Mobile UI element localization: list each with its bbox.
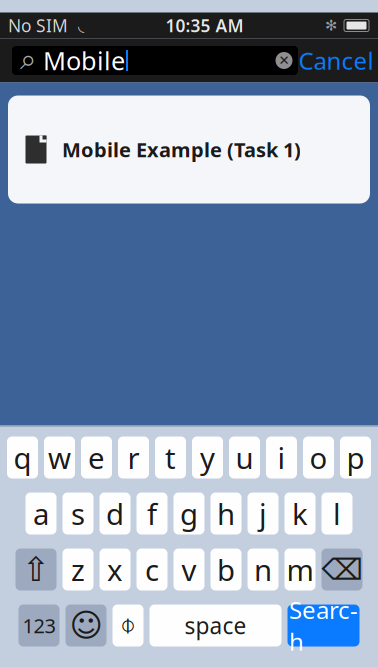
button[interactable]: Clear text <box>270 46 298 75</box>
staticText: ☺ <box>69 607 102 644</box>
button[interactable]: b <box>210 548 241 590</box>
button[interactable]: n <box>247 548 278 590</box>
button[interactable]: i <box>266 436 297 478</box>
button[interactable]: l <box>321 492 352 534</box>
button[interactable]: w <box>44 436 75 478</box>
button[interactable]: t <box>155 436 186 478</box>
staticText: v <box>181 550 196 589</box>
staticText: q <box>13 438 31 477</box>
button[interactable]: k <box>284 492 315 534</box>
button[interactable]: Mobile Example (Task 1) <box>8 95 370 203</box>
button[interactable]: h <box>210 492 241 534</box>
button[interactable]: e <box>81 436 112 478</box>
button[interactable]: y <box>192 436 223 478</box>
button[interactable]: j <box>247 492 278 534</box>
staticText: h <box>217 494 235 533</box>
staticText: e <box>88 438 105 477</box>
staticText: g <box>180 494 198 533</box>
staticText: l <box>333 494 341 533</box>
staticText: ⇧ <box>22 551 50 588</box>
staticText: o <box>309 438 327 477</box>
staticText: u <box>235 438 253 477</box>
button[interactable]: g <box>173 492 204 534</box>
staticText: p <box>346 438 364 477</box>
staticText: f <box>147 494 157 533</box>
button[interactable]: o <box>303 436 334 478</box>
staticText: d <box>106 494 124 533</box>
button[interactable]: m <box>284 548 315 590</box>
button[interactable]: r <box>118 436 149 478</box>
staticText: ✻ <box>325 17 337 34</box>
staticText: a <box>33 494 49 533</box>
staticText: k <box>292 494 308 533</box>
button[interactable]: Shift <box>15 548 56 590</box>
staticText: r <box>127 438 139 477</box>
button[interactable]: c <box>136 548 167 590</box>
staticText: m <box>286 550 313 589</box>
staticText: Search <box>289 594 358 657</box>
button[interactable]: 123 <box>18 604 59 646</box>
button[interactable]: Cancel <box>298 43 374 77</box>
button[interactable]: f <box>136 492 167 534</box>
staticText: 123 <box>22 612 55 639</box>
staticText: s <box>71 494 85 533</box>
button[interactable]: Emoji <box>65 604 106 646</box>
staticText: j <box>259 494 267 533</box>
button[interactable]: p <box>340 436 371 478</box>
staticText: n <box>254 550 272 589</box>
staticText: ⌫ <box>321 553 362 586</box>
staticText: w <box>48 438 71 477</box>
staticText: ⌕ <box>20 46 36 75</box>
staticText: Mobile Example (Task 1) <box>62 136 301 163</box>
button[interactable]: v <box>173 548 204 590</box>
staticText: x <box>107 550 123 589</box>
staticText: Cancel <box>298 45 373 76</box>
staticText: Mobile <box>43 44 125 77</box>
button[interactable]: d <box>99 492 130 534</box>
staticText: t <box>165 438 176 477</box>
staticText: b <box>217 550 235 589</box>
staticText: No SIM <box>8 14 68 37</box>
staticText: i <box>277 438 285 477</box>
staticText: ◟ <box>68 16 84 35</box>
button[interactable]: u <box>229 436 260 478</box>
button[interactable]: q <box>7 436 38 478</box>
staticText: space <box>184 610 246 640</box>
staticText: 10:35 AM <box>165 14 243 37</box>
button[interactable]: a <box>25 492 56 534</box>
button[interactable]: Search <box>287 604 359 646</box>
button[interactable]: Dictation <box>112 604 143 646</box>
staticText: c <box>145 550 159 589</box>
staticText: y <box>200 438 215 477</box>
button[interactable]: space <box>149 604 281 646</box>
button[interactable]: Delete <box>321 548 362 590</box>
button[interactable]: z <box>62 548 93 590</box>
staticText: z <box>71 550 85 589</box>
staticText: ⌽ <box>120 612 136 638</box>
staticText: ✕ <box>278 53 289 68</box>
button[interactable]: x <box>99 548 130 590</box>
button[interactable]: s <box>62 492 93 534</box>
